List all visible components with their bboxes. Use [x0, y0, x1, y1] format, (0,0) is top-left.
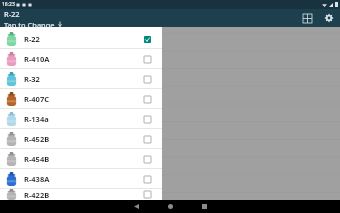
- staticText: 16:23: [2, 1, 15, 8]
- button[interactable]: Not selected: [141, 53, 153, 65]
- staticText: R-422B: [24, 190, 50, 200]
- button[interactable]: R-454B: [0, 149, 162, 168]
- button[interactable]: Not selected: [141, 173, 153, 185]
- button[interactable]: R-410A: [0, 49, 162, 68]
- staticText: R-134a: [24, 114, 49, 124]
- button[interactable]: Not selected: [141, 93, 153, 105]
- button[interactable]: Recents: [192, 200, 216, 213]
- staticText: R-22: [4, 9, 20, 19]
- button[interactable]: Grid view: [300, 11, 314, 25]
- staticText: R-407C: [24, 94, 50, 104]
- button[interactable]: R-32: [0, 69, 162, 88]
- staticText: R-452B: [24, 134, 50, 144]
- button[interactable]: Back: [124, 200, 148, 213]
- button[interactable]: R-134a: [0, 109, 162, 128]
- button[interactable]: Settings: [322, 11, 336, 25]
- button[interactable]: Not selected: [141, 133, 153, 145]
- button[interactable]: R-22: [0, 29, 162, 48]
- staticText: R-454B: [24, 154, 50, 164]
- button[interactable]: R-438A: [0, 169, 162, 188]
- button[interactable]: R-407C: [0, 89, 162, 108]
- button[interactable]: Selected: [141, 33, 153, 45]
- staticText: R-32: [24, 74, 40, 84]
- staticText: R-410A: [24, 54, 50, 64]
- button[interactable]: R-452B: [0, 129, 162, 148]
- staticText: R-22: [24, 34, 40, 44]
- button[interactable]: R-422B: [0, 189, 162, 200]
- button[interactable]: Home: [158, 200, 182, 213]
- staticText: Tap to Change: [4, 20, 55, 27]
- staticText: R-438A: [24, 174, 50, 184]
- button[interactable]: Not selected: [141, 153, 153, 165]
- button[interactable]: Not selected: [141, 113, 153, 125]
- button[interactable]: Not selected: [141, 73, 153, 85]
- button[interactable]: Not selected: [141, 189, 153, 200]
